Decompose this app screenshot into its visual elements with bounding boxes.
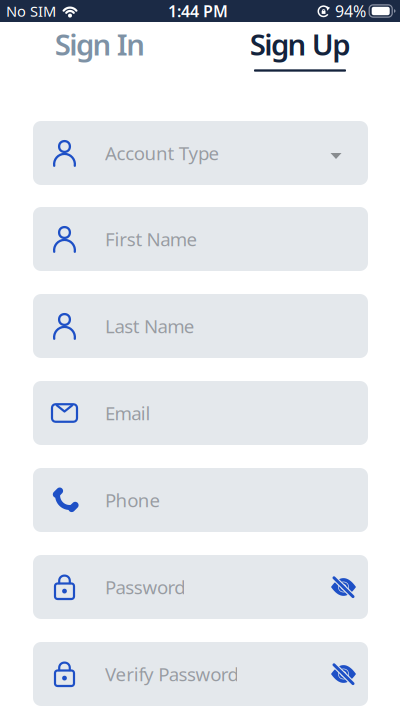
button[interactable]: Verify Password (33, 642, 368, 706)
staticText: 94% (335, 0, 366, 22)
staticText: No SIM (6, 1, 56, 21)
staticText: Verify Password (105, 662, 238, 686)
button[interactable]: Sign Up (200, 22, 400, 66)
staticText: Sign In (55, 24, 145, 63)
button[interactable]: First Name (33, 207, 368, 271)
staticText: Sign Up (250, 24, 350, 63)
staticText: 1:44 PM (168, 0, 228, 22)
staticText: Phone (105, 488, 160, 512)
button[interactable]: Phone (33, 468, 368, 532)
staticText: First Name (105, 227, 197, 251)
staticText: Email (105, 401, 150, 425)
staticText: Password (105, 575, 185, 599)
button[interactable]: Account Type (33, 121, 368, 185)
staticText: Last Name (105, 314, 195, 338)
button[interactable]: Last Name (33, 294, 368, 358)
button[interactable]: Password (33, 555, 368, 619)
staticText: Account Type (105, 141, 220, 165)
button[interactable]: Sign In (0, 22, 200, 66)
button[interactable]: Email (33, 381, 368, 445)
